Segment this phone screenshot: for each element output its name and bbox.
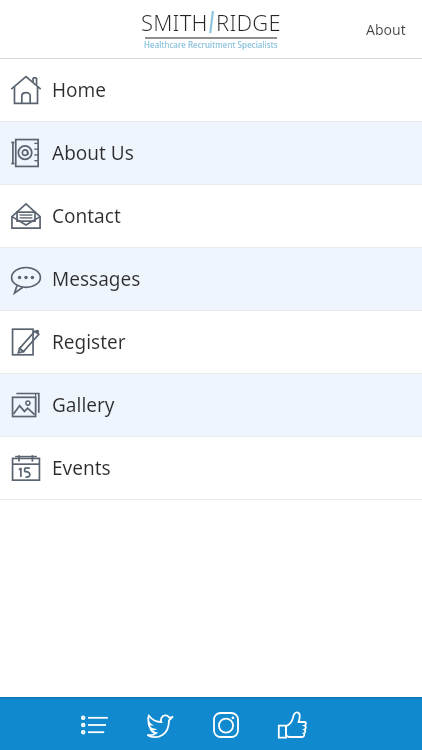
staticText: Gallery: [52, 392, 115, 418]
staticText: Messages: [52, 266, 141, 292]
button[interactable]: About Us: [0, 122, 422, 184]
button[interactable]: Contact: [0, 185, 422, 247]
button[interactable]: Like: [276, 709, 308, 741]
button[interactable]: Events: [0, 437, 422, 499]
staticText: Home: [52, 77, 107, 103]
staticText: About: [366, 20, 406, 39]
button[interactable]: About: [350, 10, 422, 49]
button[interactable]: Twitter: [144, 709, 176, 741]
button[interactable]: Gallery: [0, 374, 422, 436]
button[interactable]: Register: [0, 311, 422, 373]
button[interactable]: List: [78, 709, 110, 741]
staticText: Events: [52, 455, 111, 481]
button[interactable]: Home: [0, 59, 422, 121]
button[interactable]: Instagram: [210, 709, 242, 741]
staticText: Register: [52, 329, 126, 355]
staticText: Contact: [52, 203, 121, 229]
button[interactable]: Messages: [0, 248, 422, 310]
staticText: Healthcare Recruitment Specialists: [144, 39, 278, 50]
staticText: About Us: [52, 140, 134, 166]
staticText: SMITH: [141, 7, 208, 37]
staticText: RIDGE: [216, 7, 281, 37]
